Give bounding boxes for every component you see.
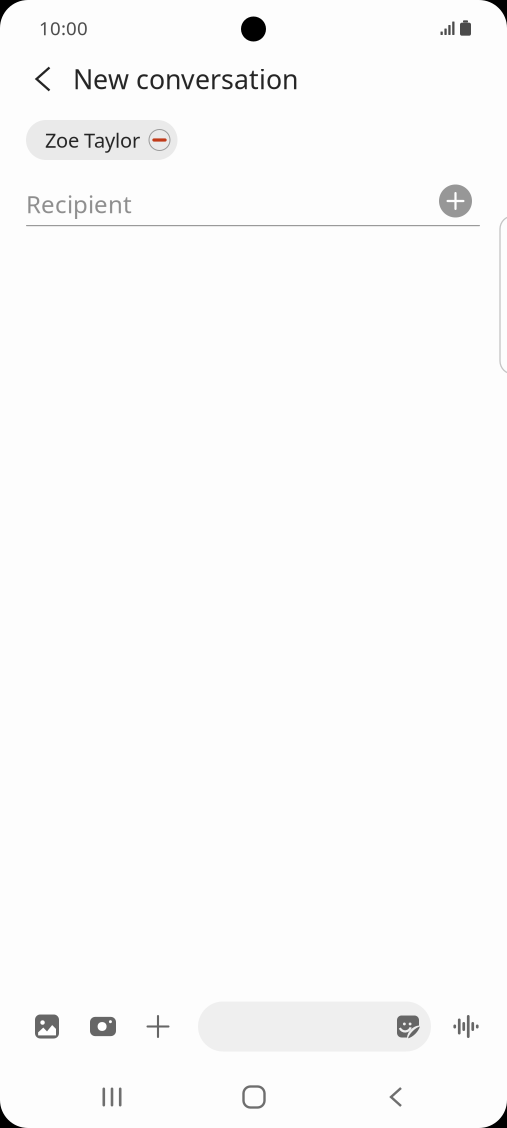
- button[interactable]: Back: [19, 55, 67, 103]
- button[interactable]: Camera: [71, 998, 135, 1054]
- button[interactable]: Back: [361, 1076, 431, 1118]
- staticText: 10:00: [39, 16, 88, 40]
- button[interactable]: Gallery: [23, 998, 71, 1054]
- button[interactable]: Enter message: [198, 1001, 431, 1051]
- button[interactable]: Home: [219, 1076, 289, 1118]
- staticText: Recipient: [26, 188, 132, 220]
- button[interactable]: Zoe Taylor: [26, 120, 177, 160]
- staticText: New conversation: [73, 61, 298, 97]
- button[interactable]: Add recipient: [439, 183, 480, 225]
- button[interactable]: Recent apps: [77, 1076, 147, 1118]
- button[interactable]: Attach: [135, 998, 181, 1054]
- button[interactable]: Voice message: [431, 998, 501, 1054]
- staticText: Zoe Taylor: [45, 127, 140, 153]
